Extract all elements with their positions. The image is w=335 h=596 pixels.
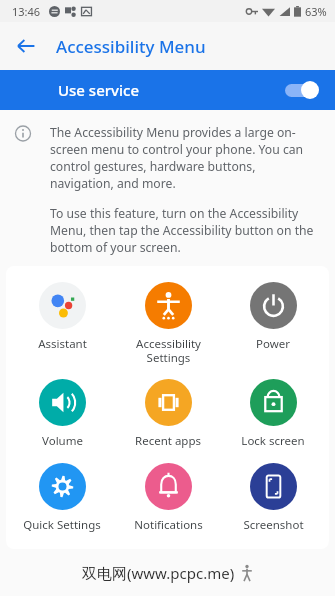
button[interactable]: Notifications xyxy=(118,459,218,537)
staticText: Assistant xyxy=(38,336,87,352)
button[interactable]: Quick Settings xyxy=(12,459,112,537)
button[interactable]: Use service xyxy=(0,70,335,110)
button[interactable]: Assistant xyxy=(12,278,112,356)
other: Accessibility button xyxy=(241,564,253,582)
staticText: 13:46 xyxy=(12,4,41,19)
staticText: 63% xyxy=(305,4,327,19)
button[interactable]: Back xyxy=(8,28,44,64)
staticText: Accessibility Settings xyxy=(136,336,201,365)
button[interactable]: Lock screen xyxy=(223,375,323,453)
staticText: 双电网(www.pcpc.me) xyxy=(82,563,235,583)
button[interactable]: Volume xyxy=(12,375,112,453)
staticText: Notifications xyxy=(134,517,203,533)
button[interactable]: Accessibility Settings xyxy=(118,278,218,369)
button[interactable]: Recent apps xyxy=(118,375,218,453)
button[interactable]: Screenshot xyxy=(223,459,323,537)
staticText: Screenshot xyxy=(243,517,304,533)
staticText: Use service xyxy=(58,80,140,100)
staticText: Recent apps xyxy=(135,433,201,449)
staticText: Volume xyxy=(42,433,83,449)
staticText: To use this feature, turn on the Accessi… xyxy=(50,205,321,256)
staticText: Power xyxy=(256,336,290,352)
button[interactable]: Power xyxy=(223,278,323,356)
staticText: Lock screen xyxy=(241,433,305,449)
staticText: Accessibility Menu xyxy=(56,35,206,58)
staticText: The Accessibility Menu provides a large … xyxy=(50,124,321,192)
staticText: Quick Settings xyxy=(23,517,101,533)
